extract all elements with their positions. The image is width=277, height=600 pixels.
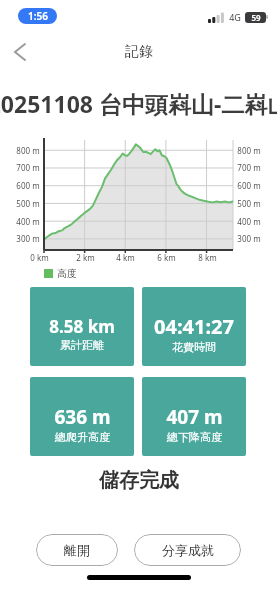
staticText: 花費時間: [172, 340, 216, 354]
staticText: 離開: [64, 542, 90, 558]
staticText: 儲存完成: [99, 468, 179, 493]
staticText: 總下降高度: [167, 430, 222, 444]
staticText: 700 m: [237, 162, 261, 173]
staticText: 0 km: [30, 252, 49, 263]
staticText: 4G: [229, 11, 241, 23]
button[interactable]: 04:41:27: [142, 287, 246, 366]
staticText: 1:56: [28, 9, 48, 23]
button[interactable]: 407 m: [142, 377, 246, 456]
staticText: 04:41:27: [154, 313, 234, 340]
staticText: 8.58 km: [49, 315, 115, 338]
staticText: 800 m: [16, 145, 40, 156]
staticText: 20251108 台中頭嵙山-二嵙山: [0, 88, 277, 119]
staticText: 600 m: [237, 180, 261, 191]
button[interactable]: 636 m: [30, 377, 134, 456]
staticText: 6 km: [157, 252, 176, 263]
staticText: 高度: [57, 267, 77, 280]
staticText: 59: [251, 12, 261, 23]
staticText: 總爬升高度: [55, 430, 110, 444]
staticText: 636 m: [54, 404, 111, 430]
button[interactable]: 分享成就: [134, 534, 241, 566]
staticText: 4 km: [116, 252, 135, 263]
staticText: 300 m: [16, 233, 40, 244]
staticText: 2 km: [76, 252, 95, 263]
staticText: 記錄: [125, 43, 153, 61]
staticText: 407 m: [166, 404, 223, 430]
staticText: 8 km: [198, 252, 217, 263]
staticText: 800 m: [237, 145, 261, 156]
staticText: 分享成就: [162, 542, 214, 558]
staticText: 累計距離: [60, 338, 104, 352]
button[interactable]: 離開: [36, 534, 118, 566]
staticText: 400 m: [16, 216, 40, 227]
button[interactable]: 8.58 km: [30, 287, 134, 366]
button[interactable]: [8, 40, 32, 64]
staticText: 300 m: [237, 233, 261, 244]
staticText: 500 m: [237, 198, 261, 209]
staticText: 600 m: [16, 180, 40, 191]
staticText: 500 m: [16, 198, 40, 209]
staticText: 700 m: [16, 162, 40, 173]
staticText: 400 m: [237, 216, 261, 227]
